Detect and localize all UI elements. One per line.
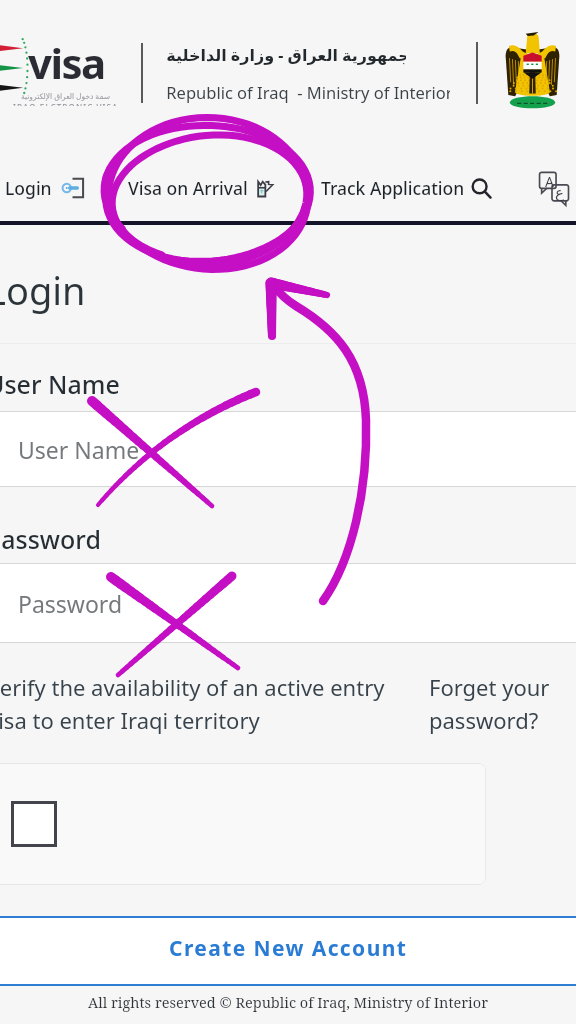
- staticText: ع: [555, 184, 564, 201]
- staticText: A: [545, 172, 554, 191]
- staticText: IRAQ ELCTRONIC VISA: [13, 102, 119, 106]
- staticText: visa: [28, 34, 105, 91]
- button[interactable]: Create New Account: [0, 916, 576, 986]
- button[interactable]: Track Application: [316, 164, 498, 212]
- staticText: جمهورية العراق - وزارة الداخلية: [166, 44, 406, 66]
- button[interactable]: Password: [0, 563, 576, 643]
- button[interactable]: Change language: [528, 164, 576, 212]
- button[interactable]: Forget your password?: [429, 672, 559, 735]
- staticText: سمة دخول العراق الإلكترونية: [21, 91, 111, 101]
- staticText: Password: [18, 588, 123, 619]
- button[interactable]: I am not a robot: [11, 801, 57, 847]
- staticText: Track Application: [321, 176, 465, 200]
- staticText: Password: [0, 522, 101, 556]
- staticText: Verify the availability of an active ent…: [0, 672, 402, 735]
- staticText: Create New Account: [169, 934, 408, 963]
- staticText: Republic of Iraq - Ministry of Interior: [166, 81, 450, 103]
- button[interactable]: Login: [0, 164, 90, 212]
- staticText: User Name: [0, 367, 120, 401]
- staticText: Login: [0, 264, 86, 316]
- button[interactable]: User Name: [0, 411, 576, 487]
- staticText: Forget your password?: [429, 672, 559, 735]
- staticText: All rights reserved © Republic of Iraq, …: [88, 992, 488, 1012]
- staticText: Visa on Arrival: [128, 176, 248, 200]
- staticText: Login: [5, 176, 52, 200]
- button[interactable]: Visa on Arrival: [123, 164, 279, 212]
- staticText: User Name: [18, 434, 140, 465]
